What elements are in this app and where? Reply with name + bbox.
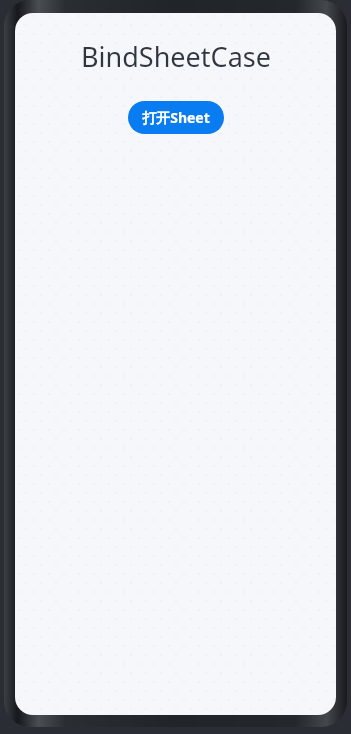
staticText: BindSheetCase xyxy=(81,38,271,75)
staticText: 打开Sheet xyxy=(142,108,210,127)
button[interactable]: 打开Sheet xyxy=(128,101,224,134)
